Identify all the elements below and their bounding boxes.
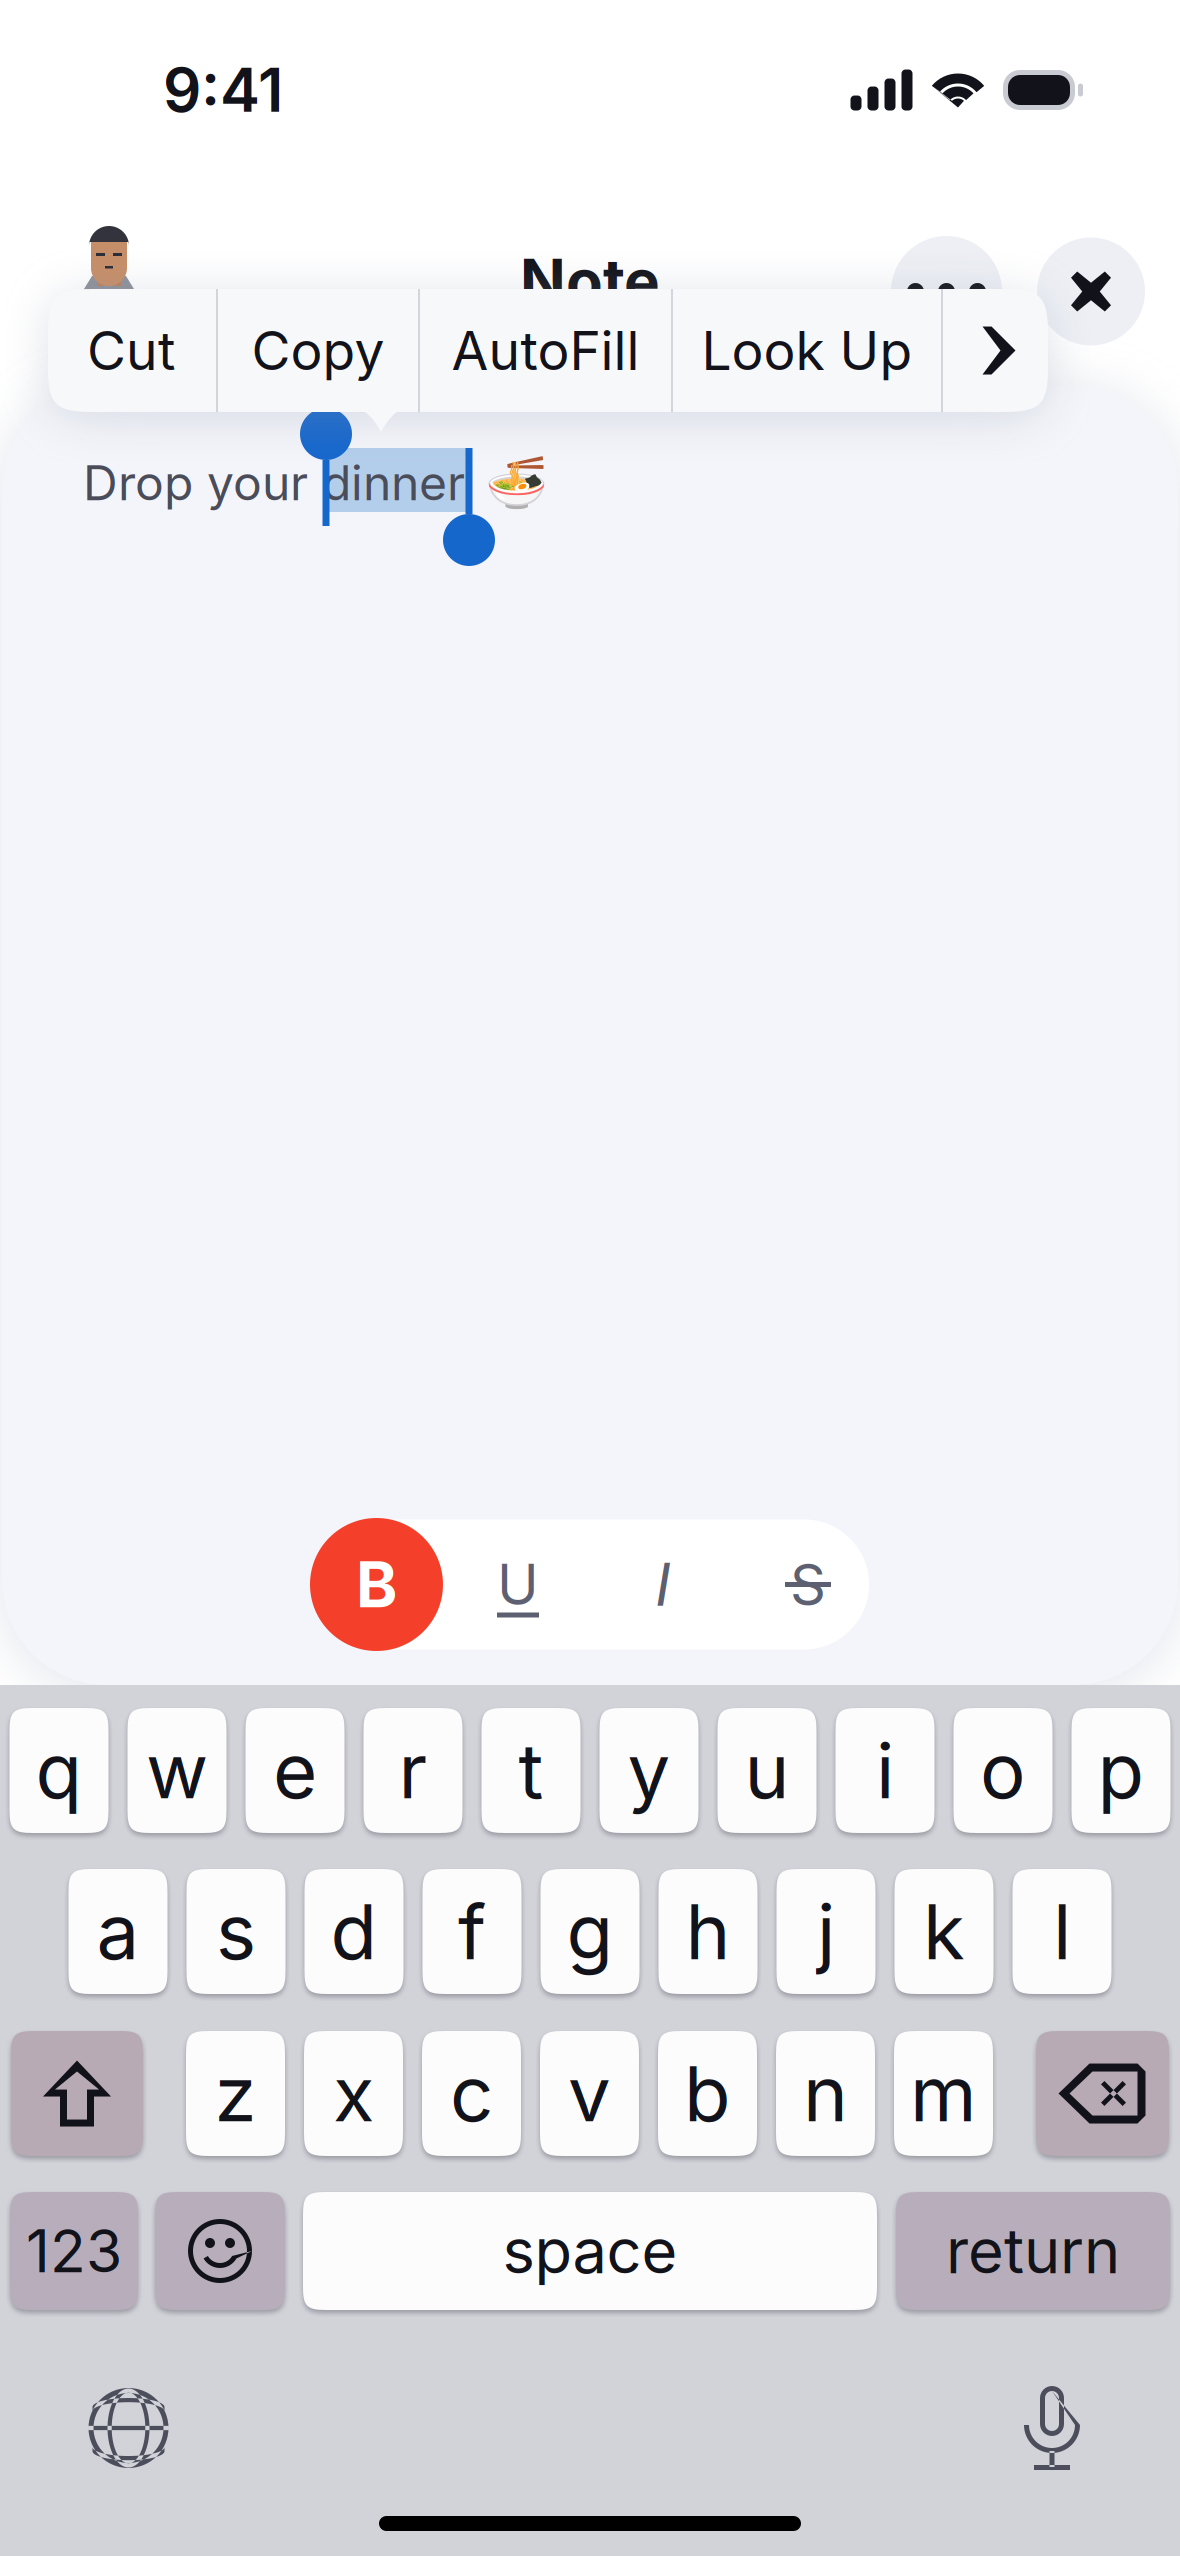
staticText: u xyxy=(744,1724,789,1816)
staticText: e xyxy=(273,1724,317,1816)
button[interactable]: i xyxy=(835,1708,934,1833)
button[interactable]: AutoFill xyxy=(420,289,671,412)
staticText: return xyxy=(946,2214,1120,2288)
button[interactable]: t xyxy=(481,1708,580,1833)
staticText: B xyxy=(356,1547,397,1622)
staticText: S xyxy=(790,1551,826,1618)
button[interactable]: Delete xyxy=(1036,2031,1169,2156)
staticText: Look Up xyxy=(701,318,912,383)
button[interactable]: n xyxy=(776,2031,875,2156)
button[interactable]: l xyxy=(1012,1869,1111,1994)
button[interactable]: y xyxy=(599,1708,698,1833)
staticText: b xyxy=(684,2047,731,2139)
button[interactable]: Strikethrough xyxy=(763,1519,853,1649)
staticText: I xyxy=(655,1549,671,1620)
staticText: n xyxy=(803,2047,848,2139)
staticText: k xyxy=(923,1885,965,1977)
staticText: g xyxy=(566,1885,613,1977)
button[interactable]: Emoji xyxy=(155,2192,285,2310)
button[interactable]: o xyxy=(953,1708,1052,1833)
button[interactable]: Profile xyxy=(76,220,144,304)
staticText: z xyxy=(214,2047,256,2139)
button[interactable]: Underline xyxy=(473,1519,563,1649)
staticText: y xyxy=(627,1724,670,1816)
staticText: 9:41 xyxy=(163,54,283,126)
staticText: AutoFill xyxy=(451,318,639,383)
button[interactable]: m xyxy=(894,2031,993,2156)
button[interactable]: return xyxy=(896,2192,1170,2310)
button[interactable]: c xyxy=(422,2031,521,2156)
staticText: l xyxy=(1053,1885,1071,1977)
staticText: h xyxy=(685,1885,730,1977)
staticText: s xyxy=(216,1885,256,1977)
button[interactable]: p xyxy=(1071,1708,1170,1833)
staticText: w xyxy=(146,1724,208,1816)
button[interactable]: Italic xyxy=(618,1519,708,1649)
button[interactable]: f xyxy=(422,1869,521,1994)
button[interactable]: Copy xyxy=(218,289,418,412)
button[interactable]: More actions xyxy=(943,289,1050,412)
staticText: a xyxy=(96,1885,139,1977)
button[interactable]: d xyxy=(304,1869,403,1994)
button[interactable]: k xyxy=(894,1869,993,1994)
staticText: c xyxy=(450,2047,493,2139)
button[interactable]: g xyxy=(540,1869,639,1994)
staticText: Note xyxy=(520,245,660,317)
button[interactable]: More xyxy=(891,236,1002,347)
staticText: r xyxy=(398,1724,427,1816)
staticText: 123 xyxy=(26,2215,122,2286)
button[interactable]: a xyxy=(68,1869,167,1994)
button[interactable]: w xyxy=(127,1708,226,1833)
button[interactable]: x xyxy=(304,2031,403,2156)
staticText: v xyxy=(568,2047,611,2139)
staticText: i xyxy=(876,1724,894,1816)
button[interactable]: space xyxy=(303,2192,877,2310)
button[interactable]: r xyxy=(363,1708,462,1833)
staticText: x xyxy=(333,2047,374,2139)
staticText: o xyxy=(980,1724,1026,1816)
button[interactable]: j xyxy=(776,1869,875,1994)
button[interactable]: h xyxy=(658,1869,757,1994)
button[interactable]: z xyxy=(186,2031,285,2156)
button[interactable]: v xyxy=(540,2031,639,2156)
button[interactable]: Cut xyxy=(46,289,216,412)
button[interactable]: 123 xyxy=(10,2192,138,2310)
staticText: j xyxy=(817,1885,835,1977)
button[interactable]: u xyxy=(717,1708,816,1833)
button[interactable]: Close xyxy=(1037,237,1145,345)
button[interactable]: s xyxy=(186,1869,285,1994)
staticText: q xyxy=(35,1724,82,1816)
button[interactable]: Look Up xyxy=(673,289,941,412)
staticText: Cut xyxy=(87,318,175,383)
staticText: 🍜 xyxy=(485,453,548,513)
button[interactable]: Next keyboard xyxy=(88,2387,169,2468)
staticText: Drop your dinner xyxy=(83,454,465,512)
staticText: p xyxy=(1097,1724,1144,1816)
button[interactable]: Dictate xyxy=(1024,2385,1081,2471)
staticText: Copy xyxy=(251,318,384,383)
button[interactable]: q xyxy=(9,1708,108,1833)
button[interactable]: B xyxy=(310,1518,443,1651)
button[interactable]: Shift xyxy=(11,2031,143,2156)
button[interactable]: e xyxy=(245,1708,344,1833)
staticText: d xyxy=(330,1885,377,1977)
button[interactable]: b xyxy=(658,2031,757,2156)
staticText: U xyxy=(497,1551,539,1618)
staticText: space xyxy=(502,2214,677,2288)
staticText: m xyxy=(910,2047,977,2139)
staticText: t xyxy=(518,1724,543,1816)
staticText: f xyxy=(458,1885,486,1977)
